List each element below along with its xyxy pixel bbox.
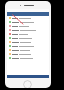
button[interactable] bbox=[7, 20, 49, 24]
button[interactable] bbox=[7, 28, 49, 32]
button[interactable] bbox=[7, 36, 49, 40]
button[interactable] bbox=[7, 48, 49, 52]
button[interactable] bbox=[7, 16, 49, 20]
button[interactable] bbox=[7, 24, 49, 28]
button[interactable]: Home bbox=[23, 80, 32, 88]
button[interactable] bbox=[7, 32, 49, 36]
button[interactable] bbox=[7, 52, 49, 56]
button[interactable] bbox=[7, 44, 49, 48]
button[interactable] bbox=[7, 56, 49, 60]
button[interactable] bbox=[7, 40, 49, 44]
button[interactable] bbox=[7, 12, 49, 16]
